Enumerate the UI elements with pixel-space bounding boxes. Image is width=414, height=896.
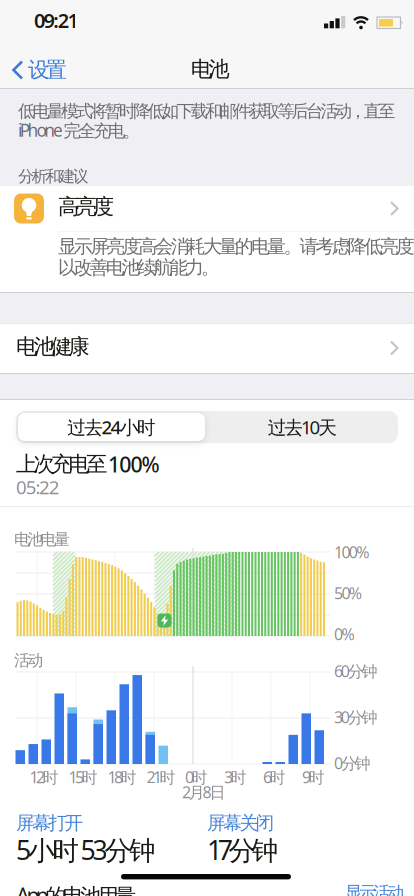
staticText: 18时 (107, 766, 136, 788)
button[interactable]: 显示活动 (345, 882, 404, 896)
staticText: 05:22 (16, 474, 60, 499)
staticText: 电池电量 (14, 529, 70, 549)
staticText: 100% (334, 541, 369, 563)
staticText: 0分钟 (334, 752, 371, 774)
staticText: 电池 (191, 56, 229, 82)
staticText: 屏幕关闭 (207, 811, 275, 834)
staticText: 0% (334, 623, 354, 645)
staticText: 分析和建议 (18, 166, 89, 186)
staticText: 设置 (28, 57, 66, 83)
staticText: 30分钟 (334, 706, 377, 728)
staticText: 过去10天 (268, 415, 337, 439)
staticText: 过去24小时 (67, 415, 156, 439)
button[interactable]: 过去10天 (207, 411, 398, 443)
staticText: 50% (334, 582, 362, 604)
staticText: 9时 (302, 766, 324, 788)
staticText: 12时 (29, 766, 58, 788)
button[interactable]: 设置 (12, 55, 66, 85)
staticText: 17分钟 (207, 832, 278, 867)
staticText: 60分钟 (334, 660, 377, 682)
staticText: 5小时 53分钟 (16, 832, 156, 867)
button[interactable]: 电池健康 (0, 323, 414, 373)
staticText: 0时 (185, 766, 207, 788)
staticText: 2月8日 (182, 781, 225, 803)
staticText: 上次充电至 (16, 451, 107, 477)
staticText: 活动 (14, 650, 43, 670)
staticText: 100% (108, 450, 160, 478)
staticText: 显示屏亮度高会消耗大量的电量。请考虑降低亮度 (58, 235, 414, 258)
staticText: 09:21 (34, 7, 78, 34)
staticText: 低电量模式将暂时降低如下载和邮件获取等后台活动，直至 (18, 100, 395, 122)
staticText: 高亮度 (58, 193, 114, 220)
staticText: 电池健康 (16, 333, 89, 360)
staticText: App的电池用量 (16, 881, 136, 896)
staticText: 21时 (146, 766, 175, 788)
staticText: 显示活动 (345, 882, 404, 896)
staticText: iPhone 完全充电。 (18, 118, 140, 142)
staticText: 屏幕打开 (16, 811, 84, 834)
button[interactable]: 过去24小时 (16, 411, 207, 443)
staticText: 6时 (263, 766, 285, 788)
staticText: 以改善电池续航能力。 (58, 256, 220, 279)
staticText: 15时 (68, 766, 97, 788)
button[interactable]: 高亮度 (0, 186, 414, 231)
staticText: 3时 (224, 766, 246, 788)
